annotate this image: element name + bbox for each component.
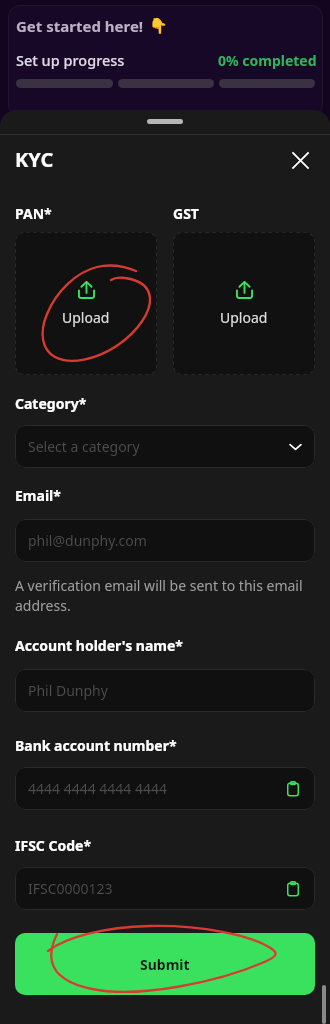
staticText: IFSC Code*	[15, 836, 92, 855]
staticText: Submit	[140, 955, 190, 974]
button[interactable]: Paste	[284, 780, 302, 798]
button[interactable]: Upload	[15, 232, 157, 375]
staticText: Upload	[62, 308, 110, 327]
button[interactable]: phil@dunphy.com	[15, 519, 315, 562]
button[interactable]: Phil Dunphy	[15, 669, 315, 712]
staticText: 4444 4444 4444 4444	[28, 779, 168, 798]
staticText: IFSC0000123	[28, 879, 113, 898]
staticText: Email*	[15, 486, 61, 505]
staticText: Set up progress	[16, 50, 125, 70]
button[interactable]: Close	[285, 145, 315, 175]
staticText: PAN*	[15, 204, 52, 223]
button[interactable]: Submit	[15, 933, 315, 995]
staticText: Account holder's name*	[15, 636, 183, 655]
staticText: Category*	[15, 394, 87, 413]
staticText: Upload	[220, 308, 268, 327]
staticText: 👇	[149, 17, 168, 35]
staticText: Bank account number*	[15, 736, 177, 755]
staticText: KYC	[15, 146, 54, 173]
button[interactable]: 4444 4444 4444 4444	[15, 767, 315, 810]
button[interactable]: Select a category	[15, 425, 315, 468]
button[interactable]: Paste	[284, 880, 302, 898]
button[interactable]: IFSC0000123	[15, 867, 315, 910]
staticText: phil@dunphy.com	[28, 531, 147, 550]
staticText: A verification email will be sent to thi…	[15, 576, 315, 616]
staticText: 0% completed	[218, 51, 317, 70]
staticText: Phil Dunphy	[28, 681, 108, 700]
staticText: Get started here!	[16, 16, 144, 36]
staticText: Select a category	[28, 437, 140, 456]
button[interactable]: Upload	[173, 232, 315, 375]
staticText: GST	[173, 204, 199, 223]
